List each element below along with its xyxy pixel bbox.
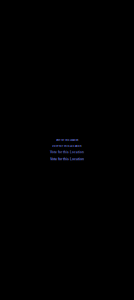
staticText: Vote for this Location — [50, 150, 84, 154]
staticText: Vote for this Location — [52, 144, 82, 148]
staticText: Vote for this Location — [56, 139, 78, 141]
staticText: Vote for this Location — [50, 157, 84, 161]
